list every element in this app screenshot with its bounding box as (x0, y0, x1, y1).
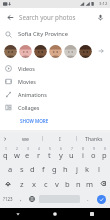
button[interactable]: Back (4, 11, 16, 23)
staticText: Animations (18, 91, 47, 98)
staticText: 6 (60, 146, 62, 150)
button[interactable]: Home (36, 208, 73, 220)
button[interactable]: 8 (77, 144, 88, 161)
staticText: 3:12 (99, 1, 108, 7)
staticText: m (86, 179, 94, 189)
button[interactable]: 5 (44, 144, 55, 161)
button[interactable]: v (51, 176, 62, 191)
staticText: j (76, 164, 78, 174)
button[interactable]: ?123 (0, 191, 15, 207)
button[interactable]: h (60, 161, 71, 176)
staticText: 0 (104, 146, 106, 150)
button[interactable]: Search (97, 195, 106, 204)
button[interactable]: b (62, 176, 73, 191)
staticText: u (69, 150, 74, 160)
staticText: 5 (49, 146, 51, 150)
staticText: Thanks (85, 135, 103, 142)
staticText: Collages (18, 104, 40, 111)
button[interactable]: SHOW MORE (18, 116, 51, 126)
staticText: 8 (82, 146, 84, 150)
button[interactable]: we (9, 133, 42, 144)
staticText: h (63, 164, 68, 174)
button[interactable]: 0 (99, 144, 110, 161)
button[interactable]: More people (95, 45, 107, 57)
staticText: SHOW MORE (20, 118, 49, 124)
staticText: Search your photos (19, 13, 76, 21)
staticText: o (91, 150, 96, 160)
button[interactable]: I (43, 133, 76, 144)
button[interactable]: 9 (88, 144, 99, 161)
staticText: . (87, 195, 89, 203)
button[interactable]: Shift (0, 176, 16, 191)
staticText: z (20, 179, 24, 189)
button[interactable]: Videos (0, 62, 110, 75)
button[interactable]: Animations (0, 88, 110, 101)
button[interactable]: Expand suggestions (0, 133, 9, 144)
button[interactable]: 7 (66, 144, 77, 161)
staticText: i (82, 150, 84, 160)
button[interactable]: l (93, 161, 104, 176)
button[interactable]: Person (64, 45, 77, 58)
staticText: 2 (16, 146, 18, 150)
staticText: v (55, 179, 59, 189)
button[interactable]: z (16, 176, 28, 191)
button[interactable]: 1 (0, 144, 11, 161)
button[interactable]: Change language (26, 191, 37, 207)
button[interactable]: Back (0, 208, 36, 220)
button[interactable]: m (84, 176, 95, 191)
staticText: 1 (5, 146, 7, 150)
staticText: d (30, 164, 35, 174)
staticText: c (44, 179, 48, 189)
staticText: l (98, 164, 100, 174)
button[interactable]: Sofia City Province (0, 26, 110, 42)
button[interactable]: j (71, 161, 82, 176)
staticText: b (65, 179, 70, 189)
staticText: w (14, 150, 20, 160)
button[interactable]: Thanks (77, 133, 110, 144)
staticText: , (20, 195, 22, 203)
button[interactable]: , (15, 191, 26, 207)
button[interactable]: 6 (55, 144, 66, 161)
staticText: a (8, 164, 13, 174)
button[interactable]: c (40, 176, 51, 191)
button[interactable]: 3 (22, 144, 33, 161)
staticText: s (20, 164, 24, 174)
staticText: g (52, 164, 57, 174)
staticText: n (76, 179, 81, 189)
staticText: p (102, 150, 107, 160)
button[interactable]: f (38, 161, 49, 176)
button[interactable]: 2 (11, 144, 22, 161)
staticText: q (3, 150, 8, 160)
staticText: I (59, 135, 61, 142)
button[interactable]: Person (79, 45, 92, 58)
staticText: e (25, 150, 30, 160)
staticText: we (22, 135, 30, 142)
button[interactable]: . (82, 191, 93, 207)
button[interactable]: Collages (0, 101, 110, 114)
staticText: Videos (18, 65, 35, 72)
button[interactable]: Movies (0, 75, 110, 88)
button[interactable]: k (82, 161, 93, 176)
button[interactable]: d (27, 161, 38, 176)
button[interactable]: Recents (73, 208, 110, 220)
staticText: Movies (18, 78, 36, 85)
button[interactable]: Voice search (94, 11, 106, 23)
button[interactable]: Person (4, 45, 17, 58)
button[interactable]: Person (19, 45, 32, 58)
staticText: Sofia City Province (18, 30, 68, 38)
staticText: t (48, 150, 51, 160)
button[interactable]: a (5, 161, 16, 176)
staticText: r (37, 150, 41, 160)
button[interactable]: n (73, 176, 84, 191)
staticText: 4 (38, 146, 40, 150)
button[interactable]: Backspace (95, 176, 110, 191)
button[interactable]: 4 (33, 144, 44, 161)
button[interactable]: x (28, 176, 40, 191)
button[interactable]: Person (34, 45, 47, 58)
button[interactable]: s (16, 161, 27, 176)
staticText: k (85, 164, 90, 174)
button[interactable]: Person (49, 45, 62, 58)
button[interactable]: g (49, 161, 60, 176)
staticText: 9 (93, 146, 95, 150)
